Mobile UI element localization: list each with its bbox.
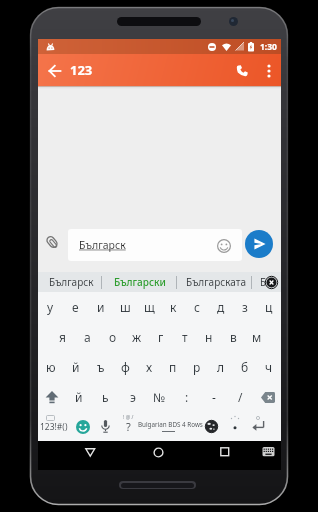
staticText: л: [217, 359, 225, 375]
button[interactable]: Българск: [47, 272, 95, 292]
staticText: 123: [70, 61, 93, 79]
button[interactable]: ф: [113, 352, 137, 382]
button[interactable]: Български: [111, 272, 169, 292]
button[interactable]: ч: [257, 352, 281, 382]
button[interactable]: [224, 412, 246, 441]
staticText: э: [130, 389, 136, 405]
button[interactable]: й: [63, 352, 88, 382]
button[interactable]: Bulgarian BDS 4 Rows: [133, 413, 207, 435]
staticText: Българск: [49, 275, 94, 289]
button[interactable]: [244, 412, 273, 441]
button[interactable]: о: [100, 322, 125, 352]
button[interactable]: с: [185, 292, 209, 322]
staticText: н: [205, 329, 213, 345]
button[interactable]: [38, 382, 65, 412]
staticText: :: [185, 389, 189, 405]
button[interactable]: [213, 441, 237, 463]
staticText: Bulgarian BDS 4 Rows: [138, 420, 203, 429]
staticText: ?: [126, 419, 131, 434]
staticText: Български: [114, 275, 166, 289]
button[interactable]: [256, 441, 280, 463]
staticText: Българската: [186, 275, 246, 289]
staticText: я: [59, 329, 66, 345]
staticText: х: [146, 359, 153, 375]
button[interactable]: Българск: [68, 229, 242, 261]
staticText: д: [217, 299, 225, 315]
button[interactable]: №: [146, 382, 173, 412]
staticText: ь: [102, 389, 109, 405]
button[interactable]: ъ: [88, 352, 113, 382]
button[interactable]: [42, 58, 67, 83]
button[interactable]: [71, 412, 94, 441]
staticText: р: [193, 359, 201, 375]
staticText: и: [97, 299, 105, 315]
staticText: ! @ /: [123, 414, 134, 421]
button[interactable]: д: [209, 292, 233, 322]
button[interactable]: :: [173, 382, 200, 412]
button[interactable]: х: [137, 352, 161, 382]
staticText: г: [158, 329, 164, 345]
button[interactable]: ь: [92, 382, 119, 412]
staticText: в: [230, 329, 237, 345]
staticText: с: [194, 299, 200, 315]
button[interactable]: к: [161, 292, 185, 322]
button[interactable]: у: [38, 292, 63, 322]
button[interactable]: г: [149, 322, 173, 352]
button[interactable]: р: [185, 352, 209, 382]
staticText: у: [47, 299, 54, 315]
button[interactable]: [230, 58, 254, 83]
button[interactable]: 123!#(): [38, 412, 69, 441]
staticText: к: [170, 299, 177, 315]
button[interactable]: ц: [257, 292, 281, 322]
staticText: й: [75, 389, 83, 405]
button[interactable]: Българската: [185, 272, 247, 292]
staticText: ц: [265, 299, 273, 315]
button[interactable]: [254, 382, 281, 412]
button[interactable]: е: [63, 292, 88, 322]
staticText: е: [72, 299, 79, 315]
button[interactable]: т: [173, 322, 197, 352]
staticText: ж: [132, 329, 142, 345]
button[interactable]: [146, 441, 170, 463]
staticText: 123!#(): [40, 421, 68, 433]
staticText: щ: [144, 299, 155, 315]
button[interactable]: ш: [113, 292, 137, 322]
button[interactable]: ?: [117, 412, 140, 441]
staticText: ш: [120, 299, 131, 315]
button[interactable]: щ: [137, 292, 161, 322]
button[interactable]: п: [161, 352, 185, 382]
button[interactable]: [94, 412, 117, 441]
button[interactable]: в: [221, 322, 245, 352]
button[interactable]: э: [119, 382, 146, 412]
staticText: й: [72, 359, 80, 375]
button[interactable]: л: [209, 352, 233, 382]
button[interactable]: ж: [125, 322, 149, 352]
staticText: ч: [265, 359, 273, 375]
staticText: Българск: [79, 238, 126, 252]
button[interactable]: -: [200, 382, 227, 412]
button[interactable]: з: [233, 292, 257, 322]
staticText: з: [242, 299, 248, 315]
button[interactable]: я: [50, 322, 75, 352]
button[interactable]: й: [65, 382, 92, 412]
staticText: ю: [46, 359, 56, 375]
staticText: ф: [121, 359, 130, 375]
staticText: п: [169, 359, 177, 375]
button[interactable]: [245, 230, 273, 258]
staticText: -: [212, 389, 216, 405]
staticText: ъ: [97, 359, 105, 375]
button[interactable]: а: [75, 322, 100, 352]
button[interactable]: и: [88, 292, 113, 322]
button[interactable]: [78, 441, 102, 463]
staticText: м: [252, 329, 262, 345]
staticText: т: [182, 329, 188, 345]
button[interactable]: м: [245, 322, 269, 352]
staticText: №: [153, 389, 166, 405]
button[interactable]: [260, 58, 278, 83]
staticText: Б: [260, 275, 267, 289]
button[interactable]: [200, 412, 223, 441]
button[interactable]: б: [233, 352, 257, 382]
button[interactable]: ю: [38, 352, 63, 382]
button[interactable]: /: [227, 382, 254, 412]
button[interactable]: н: [197, 322, 221, 352]
